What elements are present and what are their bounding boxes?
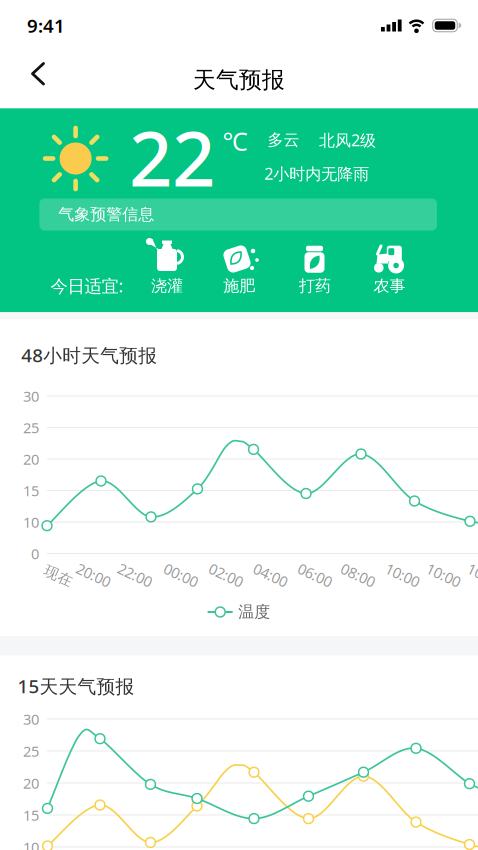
staticText: 农事 xyxy=(373,276,405,296)
staticText: 20 xyxy=(23,773,39,793)
button[interactable]: 农事 xyxy=(352,234,426,298)
staticText: 多云 xyxy=(267,130,299,150)
staticText: 10 xyxy=(23,837,39,850)
staticText: 10 xyxy=(23,512,39,532)
button[interactable] xyxy=(16,52,60,96)
staticText: 15 xyxy=(23,805,39,825)
staticText: 温度 xyxy=(238,602,270,622)
staticText: 02:00 xyxy=(208,565,244,585)
staticText: 15 xyxy=(23,481,39,500)
staticText: 今日适宜: xyxy=(50,274,123,297)
staticText: 04:00 xyxy=(252,565,288,585)
staticText: 22:00 xyxy=(117,565,153,585)
staticText: 20:00 xyxy=(75,565,111,585)
staticText: 9:41 xyxy=(27,13,65,38)
staticText: 10:00 xyxy=(466,565,478,585)
staticText: ℃ xyxy=(222,124,247,158)
staticText: 08:00 xyxy=(340,565,376,585)
staticText: 浇灌 xyxy=(151,276,183,296)
staticText: 施肥 xyxy=(223,276,255,296)
button[interactable]: 施肥 xyxy=(202,234,276,298)
staticText: 15天天气预报 xyxy=(17,674,134,698)
staticText: 气象预警信息 xyxy=(58,205,154,224)
staticText: 30 xyxy=(23,709,39,729)
staticText: 48小时天气预报 xyxy=(21,343,157,367)
staticText: 30 xyxy=(23,386,39,406)
button[interactable]: 打药 xyxy=(278,234,352,298)
staticText: 2小时内无降雨 xyxy=(264,163,369,184)
staticText: 现在 xyxy=(43,567,73,585)
staticText: 10:00 xyxy=(425,565,461,585)
staticText: 0 xyxy=(31,544,39,563)
staticText: 25 xyxy=(23,418,39,437)
staticText: 22 xyxy=(129,106,215,207)
staticText: 00:00 xyxy=(163,565,199,585)
staticText: 25 xyxy=(23,741,39,761)
button[interactable]: 气象预警信息 xyxy=(39,198,437,230)
staticText: 打药 xyxy=(299,276,331,296)
staticText: 06:00 xyxy=(297,565,333,585)
staticText: 10:00 xyxy=(384,565,420,585)
button[interactable]: 浇灌 xyxy=(130,234,204,298)
staticText: 北风2级 xyxy=(319,129,376,151)
staticText: 20 xyxy=(23,449,39,469)
staticText: 天气预报 xyxy=(193,66,285,94)
